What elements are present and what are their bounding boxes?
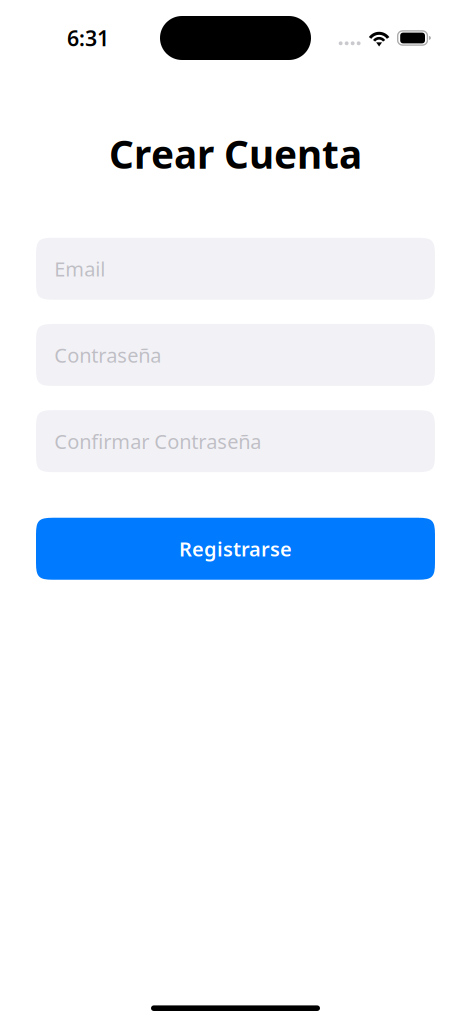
staticText: Crear Cuenta xyxy=(109,128,362,179)
staticText: Email xyxy=(54,255,105,282)
staticText: Confirmar Contraseña xyxy=(54,428,261,454)
button[interactable]: Contraseña xyxy=(36,324,435,386)
button[interactable]: Email xyxy=(36,238,435,300)
button[interactable]: Registrarse xyxy=(36,518,435,580)
button[interactable]: Confirmar Contraseña xyxy=(36,410,435,472)
staticText: Contraseña xyxy=(54,342,161,368)
staticText: Registrarse xyxy=(179,535,292,562)
staticText: 6:31 xyxy=(67,24,109,52)
